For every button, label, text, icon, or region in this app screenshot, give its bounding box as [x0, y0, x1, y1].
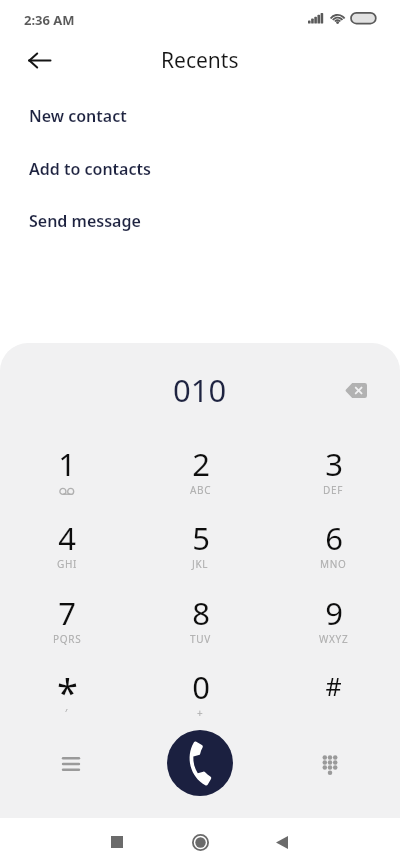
staticText: WXYZ — [319, 632, 349, 646]
staticText: + — [197, 706, 204, 720]
button[interactable]: New contact — [0, 95, 400, 137]
staticText: PQRS — [53, 632, 82, 646]
button[interactable]: 8 — [134, 592, 267, 666]
button[interactable]: Call log options — [48, 741, 93, 786]
button[interactable]: Add to contacts — [0, 148, 400, 190]
staticText: 5 — [192, 517, 210, 559]
button[interactable]: 5 — [134, 517, 267, 591]
staticText: Recents — [161, 46, 239, 75]
button[interactable]: 2 — [134, 443, 267, 517]
button[interactable]: Call — [167, 730, 233, 796]
button[interactable]: 1 — [0, 443, 134, 517]
button[interactable]: 4 — [0, 517, 134, 591]
staticText: 3 — [325, 443, 343, 485]
staticText: DEF — [323, 483, 344, 497]
staticText: TUV — [190, 632, 211, 646]
button[interactable]: Dialpad — [307, 741, 352, 786]
button[interactable]: 3 — [267, 443, 400, 517]
staticText: ′ — [65, 706, 69, 720]
staticText: New contact — [29, 105, 127, 127]
button[interactable]: Back — [17, 38, 61, 82]
button[interactable]: * — [0, 666, 134, 740]
staticText: JKL — [192, 557, 209, 571]
button[interactable]: Recent apps — [95, 818, 139, 866]
staticText: 2 — [192, 443, 210, 485]
button[interactable]: 0 — [134, 666, 267, 740]
staticText: 6 — [325, 517, 343, 559]
staticText: Add to contacts — [29, 158, 151, 180]
button[interactable]: Send message — [0, 200, 400, 242]
staticText: 9 — [325, 592, 343, 634]
staticText: ABC — [190, 483, 212, 497]
button[interactable]: 9 — [267, 592, 400, 666]
staticText: * — [57, 666, 78, 718]
staticText: 1 — [58, 443, 76, 485]
staticText: Send message — [29, 210, 141, 232]
button[interactable]: Backspace — [336, 370, 378, 412]
staticText: 0 — [192, 666, 210, 708]
staticText: GHI — [57, 557, 78, 571]
staticText: 2:36 AM — [24, 11, 75, 29]
staticText: 4 — [58, 517, 76, 559]
button[interactable]: # — [267, 666, 400, 740]
staticText: MNO — [320, 557, 347, 571]
staticText: 8 — [192, 592, 210, 634]
button[interactable]: 6 — [267, 517, 400, 591]
button[interactable]: Home — [178, 818, 222, 866]
staticText: 7 — [58, 592, 76, 634]
staticText: # — [325, 669, 342, 703]
button[interactable]: Back — [260, 818, 304, 866]
staticText: 010 — [173, 369, 227, 411]
button[interactable]: 7 — [0, 592, 134, 666]
